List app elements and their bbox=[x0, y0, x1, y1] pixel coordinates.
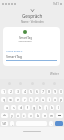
button[interactable]: y bbox=[10, 113, 14, 118]
staticText: m bbox=[50, 114, 53, 118]
staticText: Gespräch bbox=[22, 13, 43, 19]
button[interactable]: l bbox=[56, 105, 60, 110]
staticText: !#1 bbox=[2, 122, 7, 126]
staticText: v bbox=[30, 114, 32, 118]
button[interactable]: q bbox=[1, 97, 6, 102]
button[interactable]: a bbox=[4, 105, 9, 110]
button[interactable]: x bbox=[16, 113, 20, 118]
button[interactable]: . bbox=[49, 121, 53, 126]
staticText: Name ändern bbox=[6, 49, 23, 52]
button[interactable]: z bbox=[35, 97, 39, 102]
staticText: h bbox=[39, 106, 41, 110]
button[interactable]: e bbox=[15, 97, 20, 102]
button[interactable]: t bbox=[29, 97, 33, 102]
staticText: s bbox=[13, 106, 15, 110]
staticText: 8 bbox=[48, 90, 50, 94]
staticText: u bbox=[42, 98, 44, 102]
button[interactable]: i bbox=[47, 97, 51, 102]
button[interactable]: w bbox=[8, 97, 13, 102]
button[interactable]: j bbox=[44, 105, 48, 110]
staticText: SmartTag bbox=[19, 36, 32, 40]
staticText: i bbox=[49, 98, 50, 102]
button[interactable]: 3 bbox=[15, 89, 20, 94]
staticText: 7 bbox=[42, 90, 44, 94]
staticText: Name · Verbinden bbox=[21, 20, 44, 24]
button[interactable]: r bbox=[22, 97, 27, 102]
staticText: c bbox=[23, 114, 25, 118]
staticText: 4 bbox=[24, 90, 26, 94]
button[interactable]: 2 bbox=[8, 89, 13, 94]
staticText: 0 bbox=[60, 90, 62, 94]
button[interactable]: v bbox=[28, 113, 33, 118]
button[interactable]: m bbox=[49, 113, 54, 118]
button[interactable]: u bbox=[41, 97, 45, 102]
staticText: 9 bbox=[54, 90, 56, 94]
staticText: f bbox=[27, 106, 28, 110]
staticText: d bbox=[20, 106, 22, 110]
staticText: x bbox=[17, 114, 19, 118]
staticText: g bbox=[33, 106, 35, 110]
staticText: 2 bbox=[10, 90, 12, 94]
button[interactable] bbox=[1, 113, 8, 118]
button[interactable]: 1 bbox=[1, 89, 6, 94]
button[interactable]: !#1 bbox=[1, 121, 8, 126]
button[interactable]: h bbox=[38, 105, 42, 110]
staticText: q bbox=[3, 98, 5, 102]
staticText: l bbox=[58, 106, 59, 110]
staticText: e bbox=[17, 98, 19, 102]
staticText: Verbunden bbox=[18, 39, 32, 42]
staticText: r bbox=[24, 98, 26, 102]
button[interactable]: , bbox=[10, 121, 14, 126]
button[interactable]: k bbox=[50, 105, 54, 110]
staticText: z bbox=[36, 98, 38, 102]
staticText: b bbox=[37, 114, 39, 118]
staticText: , bbox=[12, 122, 13, 126]
button[interactable]: 0 bbox=[59, 89, 63, 94]
button[interactable]: s bbox=[11, 105, 16, 110]
staticText: 6 bbox=[36, 90, 38, 94]
staticText: y bbox=[11, 114, 13, 118]
button[interactable]: 4 bbox=[22, 89, 27, 94]
button[interactable]: b bbox=[35, 113, 40, 118]
staticText: k bbox=[51, 106, 53, 110]
staticText: p bbox=[60, 98, 62, 102]
staticText: j bbox=[46, 106, 47, 110]
button[interactable]: 9 bbox=[53, 89, 57, 94]
staticText: w bbox=[9, 98, 12, 102]
button[interactable]: n bbox=[42, 113, 47, 118]
staticText: n bbox=[44, 114, 46, 118]
staticText: 9:41 bbox=[53, 2, 59, 6]
staticText: o bbox=[54, 98, 56, 102]
button[interactable]: p bbox=[59, 97, 63, 102]
staticText: 1 bbox=[3, 90, 5, 94]
button[interactable]: d bbox=[18, 105, 23, 110]
button[interactable]: 8 bbox=[47, 89, 51, 94]
button[interactable] bbox=[56, 113, 63, 118]
staticText: . bbox=[51, 122, 52, 126]
button[interactable]: c bbox=[22, 113, 26, 118]
staticText: Weiter bbox=[50, 72, 59, 76]
staticText: SmartTag bbox=[6, 54, 23, 59]
button[interactable]: Enter bbox=[55, 121, 63, 126]
button[interactable]: 6 bbox=[35, 89, 39, 94]
button[interactable]: 7 bbox=[41, 89, 45, 94]
button[interactable]: f bbox=[25, 105, 30, 110]
staticText: 3 bbox=[17, 90, 19, 94]
button[interactable]: g bbox=[32, 105, 36, 110]
staticText: t bbox=[30, 98, 32, 102]
staticText: 5 bbox=[30, 90, 32, 94]
button[interactable]: o bbox=[53, 97, 57, 102]
button[interactable]: 5 bbox=[29, 89, 33, 94]
staticText: a bbox=[6, 106, 8, 110]
button[interactable]: Collapse bbox=[29, 7, 35, 13]
